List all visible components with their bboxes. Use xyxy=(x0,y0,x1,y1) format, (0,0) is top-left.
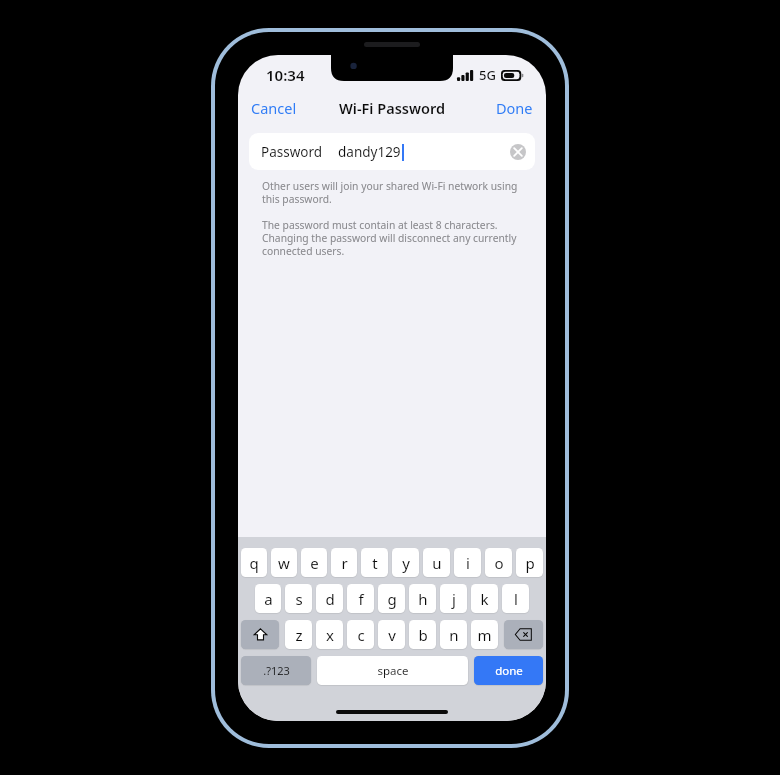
staticText: dandy129 xyxy=(338,143,401,161)
staticText: The password must contain at least 8 cha… xyxy=(262,218,517,258)
staticText: c xyxy=(357,625,365,645)
staticText: o xyxy=(494,553,504,573)
button[interactable]: o xyxy=(485,548,512,577)
staticText: u xyxy=(432,553,442,573)
staticText: g xyxy=(387,589,397,609)
button[interactable]: t xyxy=(361,548,388,577)
button[interactable]: f xyxy=(347,584,374,613)
button[interactable]: q xyxy=(241,548,267,577)
staticText: j xyxy=(452,589,456,609)
staticText: y xyxy=(402,553,410,573)
button[interactable]: Cancel xyxy=(238,92,307,124)
button[interactable]: Done xyxy=(486,92,546,124)
staticText: l xyxy=(514,589,518,609)
staticText: Done xyxy=(496,98,533,118)
staticText: z xyxy=(295,625,303,645)
button[interactable]: space xyxy=(317,656,468,685)
staticText: q xyxy=(249,553,259,573)
staticText: e xyxy=(310,553,319,573)
button[interactable]: j xyxy=(440,584,467,613)
staticText: Wi-Fi Password xyxy=(339,98,445,118)
staticText: Other users will join your shared Wi-Fi … xyxy=(262,179,518,206)
button[interactable]: b xyxy=(409,620,436,649)
staticText: Cancel xyxy=(251,98,297,118)
staticText: 5G xyxy=(479,66,496,84)
staticText: f xyxy=(358,589,364,609)
staticText: r xyxy=(341,553,348,573)
button[interactable]: d xyxy=(316,584,343,613)
staticText: a xyxy=(264,589,273,609)
staticText: t xyxy=(372,553,378,573)
button[interactable]: s xyxy=(285,584,312,613)
button[interactable]: m xyxy=(471,620,498,649)
button[interactable]: Clear text xyxy=(510,144,526,160)
staticText: d xyxy=(325,589,335,609)
button[interactable]: .?123 xyxy=(241,656,311,685)
staticText: i xyxy=(466,553,470,573)
staticText: Password xyxy=(261,143,323,161)
staticText: done xyxy=(495,663,523,679)
button[interactable]: e xyxy=(301,548,327,577)
staticText: v xyxy=(388,625,396,645)
staticText: h xyxy=(418,589,428,609)
button[interactable]: i xyxy=(454,548,481,577)
staticText: s xyxy=(295,589,303,609)
button[interactable]: p xyxy=(516,548,543,577)
staticText: .?123 xyxy=(263,663,290,678)
button[interactable]: x xyxy=(316,620,343,649)
staticText: space xyxy=(377,663,409,679)
staticText: m xyxy=(477,625,492,645)
staticText: k xyxy=(480,589,489,609)
staticText: p xyxy=(525,553,535,573)
button[interactable]: Backspace xyxy=(504,620,543,649)
button[interactable]: done xyxy=(474,656,543,685)
button[interactable]: g xyxy=(378,584,405,613)
button[interactable]: k xyxy=(471,584,498,613)
button[interactable]: Shift xyxy=(241,620,279,649)
button[interactable]: y xyxy=(392,548,419,577)
button[interactable]: c xyxy=(347,620,374,649)
staticText: n xyxy=(449,625,459,645)
button[interactable]: w xyxy=(271,548,297,577)
staticText: b xyxy=(418,625,428,645)
button[interactable]: Password xyxy=(249,133,535,170)
staticText: x xyxy=(326,625,334,645)
button[interactable]: h xyxy=(409,584,436,613)
button[interactable]: z xyxy=(285,620,312,649)
button[interactable]: l xyxy=(502,584,529,613)
staticText: w xyxy=(278,553,290,573)
button[interactable]: r xyxy=(331,548,357,577)
staticText: 10:34 xyxy=(266,65,305,85)
button[interactable]: v xyxy=(378,620,405,649)
button[interactable]: n xyxy=(440,620,467,649)
button[interactable]: a xyxy=(255,584,281,613)
button[interactable]: u xyxy=(423,548,450,577)
